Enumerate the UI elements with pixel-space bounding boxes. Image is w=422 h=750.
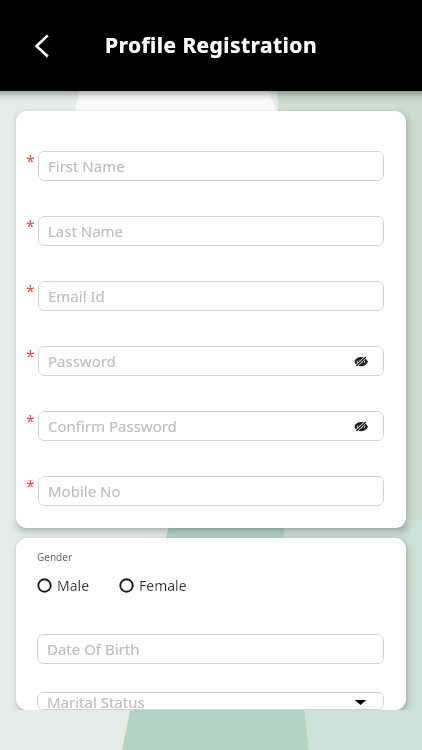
button[interactable]: Date Of Birth — [37, 634, 384, 664]
staticText: * — [26, 475, 35, 497]
staticText: Profile Registration — [105, 31, 318, 60]
button[interactable]: Back — [22, 25, 64, 67]
staticText: Last Name — [48, 221, 367, 241]
staticText: Email Id — [48, 286, 367, 306]
button[interactable]: Female — [119, 576, 187, 595]
button[interactable]: Confirm Password — [38, 411, 384, 441]
staticText: * — [26, 280, 35, 302]
staticText: Mobile No — [48, 481, 367, 501]
staticText: * — [26, 215, 35, 237]
staticText: Gender — [37, 550, 73, 564]
button[interactable]: Mobile No — [38, 476, 384, 506]
staticText: Confirm Password — [48, 416, 355, 436]
button[interactable]: Last Name — [38, 216, 384, 246]
staticText: Male — [57, 576, 90, 595]
staticText: First Name — [48, 156, 367, 176]
staticText: * — [26, 345, 35, 367]
staticText: * — [26, 410, 35, 432]
button[interactable]: Password — [38, 346, 384, 376]
staticText: Female — [139, 576, 187, 595]
button[interactable]: Email Id — [38, 281, 384, 311]
staticText: Date Of Birth — [47, 639, 367, 659]
staticText: Password — [48, 351, 355, 371]
button[interactable]: First Name — [38, 151, 384, 181]
staticText: * — [26, 150, 35, 172]
button[interactable]: Marital Status — [37, 692, 384, 710]
button[interactable]: Male — [37, 576, 90, 595]
staticText: Marital Status — [47, 692, 354, 710]
